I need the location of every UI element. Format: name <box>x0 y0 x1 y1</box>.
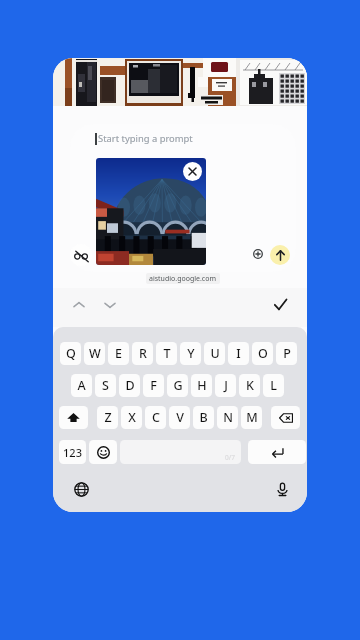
staticText: M <box>246 409 258 426</box>
staticText: Y <box>187 345 195 362</box>
button[interactable]: Incognito <box>70 244 92 266</box>
button[interactable]: Emoji <box>89 440 117 464</box>
button[interactable]: E <box>108 342 129 365</box>
button[interactable]: Return <box>248 440 306 464</box>
button[interactable]: C <box>145 406 166 429</box>
staticText: N <box>223 409 233 426</box>
button[interactable]: Y <box>180 342 201 365</box>
button[interactable]: Attached image <box>96 158 206 265</box>
staticText: D <box>125 377 135 394</box>
button[interactable]: F <box>143 374 164 397</box>
staticText: C <box>152 409 160 426</box>
button[interactable]: O <box>252 342 273 365</box>
button[interactable]: X <box>121 406 142 429</box>
staticText: P <box>283 345 291 362</box>
staticText: J <box>224 377 228 394</box>
staticText: Z <box>104 409 112 426</box>
button[interactable]: I <box>228 342 249 365</box>
button[interactable]: A <box>71 374 92 397</box>
button[interactable]: Previous field <box>68 294 90 316</box>
button[interactable]: Change keyboard <box>69 477 93 501</box>
button[interactable]: Done <box>269 293 291 315</box>
staticText: B <box>199 409 208 426</box>
button[interactable]: M <box>241 406 262 429</box>
button[interactable]: R <box>132 342 153 365</box>
button[interactable]: G <box>167 374 188 397</box>
button[interactable]: 123 <box>59 440 86 464</box>
button[interactable]: V <box>169 406 190 429</box>
button[interactable]: Send <box>270 245 290 265</box>
staticText: 123 <box>63 445 82 460</box>
staticText: aistudio.google.com <box>149 274 217 284</box>
button[interactable]: T <box>156 342 177 365</box>
button[interactable]: Q <box>60 342 81 365</box>
button[interactable]: P <box>276 342 297 365</box>
button[interactable]: L <box>263 374 284 397</box>
staticText: O <box>258 345 268 362</box>
button[interactable]: Next field <box>99 294 121 316</box>
staticText: X <box>128 409 136 426</box>
button[interactable]: U <box>204 342 225 365</box>
staticText: R <box>139 345 147 362</box>
staticText: V <box>176 409 184 426</box>
button[interactable]: W <box>84 342 105 365</box>
button[interactable]: Backspace <box>271 406 300 429</box>
staticText: E <box>115 345 122 362</box>
staticText: A <box>77 377 86 394</box>
staticText: H <box>197 377 207 394</box>
button[interactable]: Voice input <box>270 477 294 501</box>
button[interactable]: H <box>191 374 212 397</box>
staticText: Start typing a prompt <box>98 132 193 145</box>
staticText: 0/7 <box>225 453 235 462</box>
button[interactable]: B <box>193 406 214 429</box>
staticText: I <box>236 345 241 362</box>
staticText: K <box>246 377 254 394</box>
button[interactable] <box>70 124 296 272</box>
staticText: L <box>270 377 277 394</box>
staticText: T <box>163 345 171 362</box>
staticText: S <box>102 377 109 394</box>
button[interactable]: D <box>119 374 140 397</box>
button[interactable]: S <box>95 374 116 397</box>
button[interactable]: N <box>217 406 238 429</box>
staticText: F <box>150 377 157 394</box>
button[interactable]: Shift <box>59 406 88 429</box>
button[interactable]: Z <box>97 406 118 429</box>
button[interactable]: K <box>239 374 260 397</box>
staticText: G <box>173 377 183 394</box>
staticText: W <box>89 345 101 362</box>
button[interactable]: J <box>215 374 236 397</box>
button[interactable]: Add content <box>248 244 268 264</box>
staticText: U <box>210 345 220 362</box>
staticText: Q <box>66 345 76 362</box>
button[interactable]: Remove image <box>183 162 202 181</box>
